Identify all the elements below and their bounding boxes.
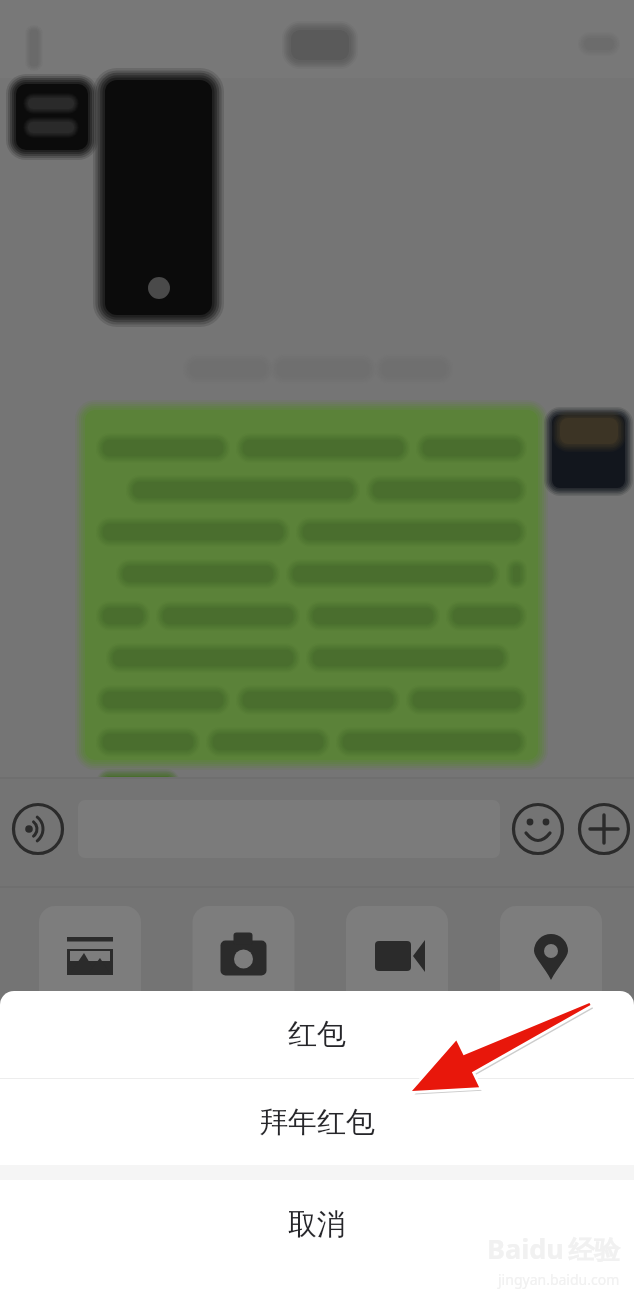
- button[interactable]: 拜年红包: [0, 1079, 634, 1165]
- staticText: 红包: [288, 1016, 346, 1053]
- button[interactable]: 红包: [0, 991, 634, 1078]
- staticText: jingyan.baidu.com: [498, 1270, 620, 1289]
- staticText: 取消: [288, 1206, 346, 1243]
- staticText: Baidu: [487, 1230, 564, 1267]
- button[interactable]: 取消: [0, 1180, 634, 1268]
- staticText: 经验: [568, 1234, 620, 1267]
- staticText: 拜年红包: [259, 1104, 375, 1141]
